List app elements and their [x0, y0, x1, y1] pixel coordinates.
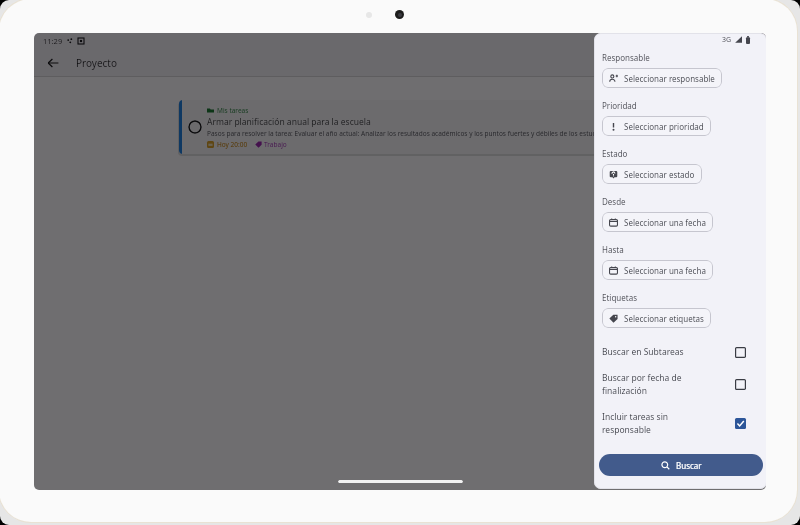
staticText: Incluir tareas sin responsable	[602, 411, 694, 436]
button[interactable]: Seleccionar estado	[602, 164, 702, 184]
staticText: Armar planificación anual para la escuel…	[207, 116, 371, 128]
staticText: Etiquetas	[602, 292, 637, 303]
staticText: 11:29	[43, 36, 63, 46]
staticText: Buscar	[676, 460, 702, 471]
button[interactable]: Buscar en Subtareas	[602, 346, 752, 358]
staticText: Proyecto	[76, 56, 118, 70]
staticText: Buscar por fecha de finalización	[602, 372, 694, 397]
staticText: Seleccionar prioridad	[624, 121, 704, 132]
staticText: Trabajo	[264, 140, 287, 149]
button[interactable]: Buscar	[599, 454, 763, 476]
staticText: Seleccionar una fecha	[624, 265, 706, 276]
button[interactable]: Seleccionar una fecha	[602, 212, 713, 232]
button[interactable]: Atrás	[42, 52, 64, 74]
staticText: Seleccionar responsable	[624, 73, 715, 84]
staticText: Mis tareas	[217, 106, 249, 115]
button[interactable]: Seleccionar etiquetas	[602, 308, 711, 328]
staticText: Prioridad	[602, 100, 637, 111]
staticText: Hasta	[602, 244, 624, 255]
button[interactable]: Seleccionar una fecha	[602, 260, 713, 280]
staticText: 3G	[722, 35, 732, 45]
button[interactable]: Incluir tareas sin responsable	[602, 411, 752, 436]
staticText: Seleccionar una fecha	[624, 217, 706, 228]
staticText: Seleccionar etiquetas	[624, 313, 704, 324]
button[interactable]: Seleccionar responsable	[602, 68, 722, 88]
staticText: Hoy 20:00	[217, 140, 248, 149]
staticText: Estado	[602, 148, 628, 159]
button[interactable]: Marcar como completada	[188, 120, 202, 134]
staticText: Responsable	[602, 52, 650, 63]
staticText: Pasos para resolver la tarea: Evaluar el…	[207, 129, 604, 138]
button[interactable]: Buscar por fecha de finalización	[602, 372, 752, 397]
button[interactable]: Seleccionar prioridad	[602, 116, 711, 136]
button[interactable]: Marcar como completada	[179, 100, 746, 154]
staticText: Seleccionar estado	[624, 169, 695, 180]
staticText: Buscar en Subtareas	[602, 346, 694, 358]
staticText: Desde	[602, 196, 626, 207]
